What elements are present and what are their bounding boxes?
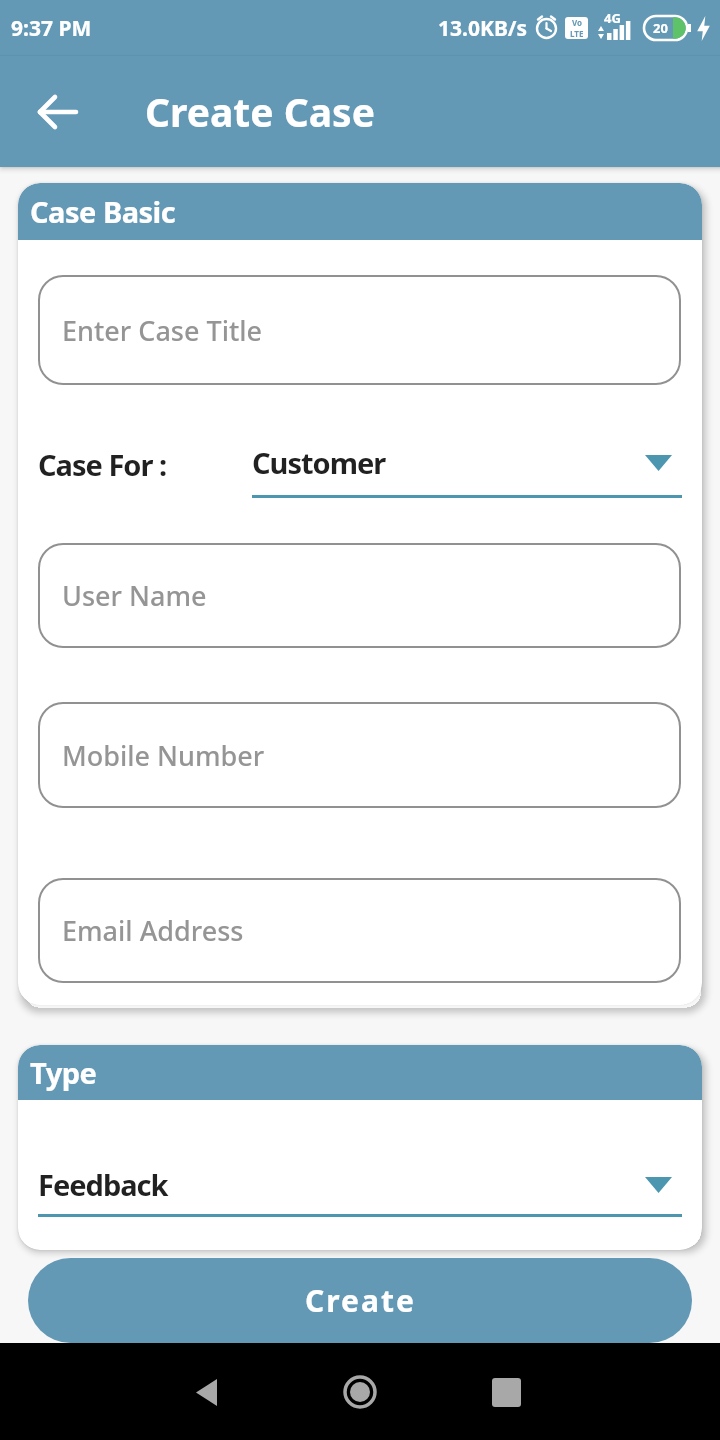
staticText: 13.0KB/s: [438, 14, 528, 43]
staticText: 4G: [604, 9, 621, 27]
button[interactable]: Enter Case Title: [38, 275, 681, 385]
staticText: Type: [30, 1053, 97, 1092]
staticText: Feedback: [38, 1165, 168, 1204]
staticText: Case For :: [38, 445, 167, 484]
staticText: 9:37 PM: [11, 14, 92, 43]
staticText: Mobile Number: [62, 737, 265, 774]
button[interactable]: [30, 84, 86, 140]
staticText: Customer: [252, 443, 386, 482]
button[interactable]: [484, 1370, 528, 1414]
staticText: 20: [653, 19, 668, 37]
button[interactable]: Email Address: [38, 878, 681, 983]
staticText: Create Case: [145, 85, 375, 138]
staticText: Create: [305, 1280, 416, 1321]
staticText: User Name: [62, 577, 207, 614]
staticText: Enter Case Title: [62, 312, 263, 349]
staticText: Email Address: [62, 912, 244, 949]
staticText: LTE: [570, 28, 584, 39]
button[interactable]: User Name: [38, 543, 681, 648]
button[interactable]: [338, 1370, 382, 1414]
button[interactable]: Create: [28, 1258, 692, 1343]
button[interactable]: Mobile Number: [38, 702, 681, 808]
button[interactable]: Customer: [252, 443, 682, 498]
staticText: Case Basic: [30, 192, 176, 231]
staticText: Vo: [572, 17, 583, 28]
button[interactable]: [184, 1370, 228, 1414]
button[interactable]: Feedback: [38, 1165, 682, 1217]
